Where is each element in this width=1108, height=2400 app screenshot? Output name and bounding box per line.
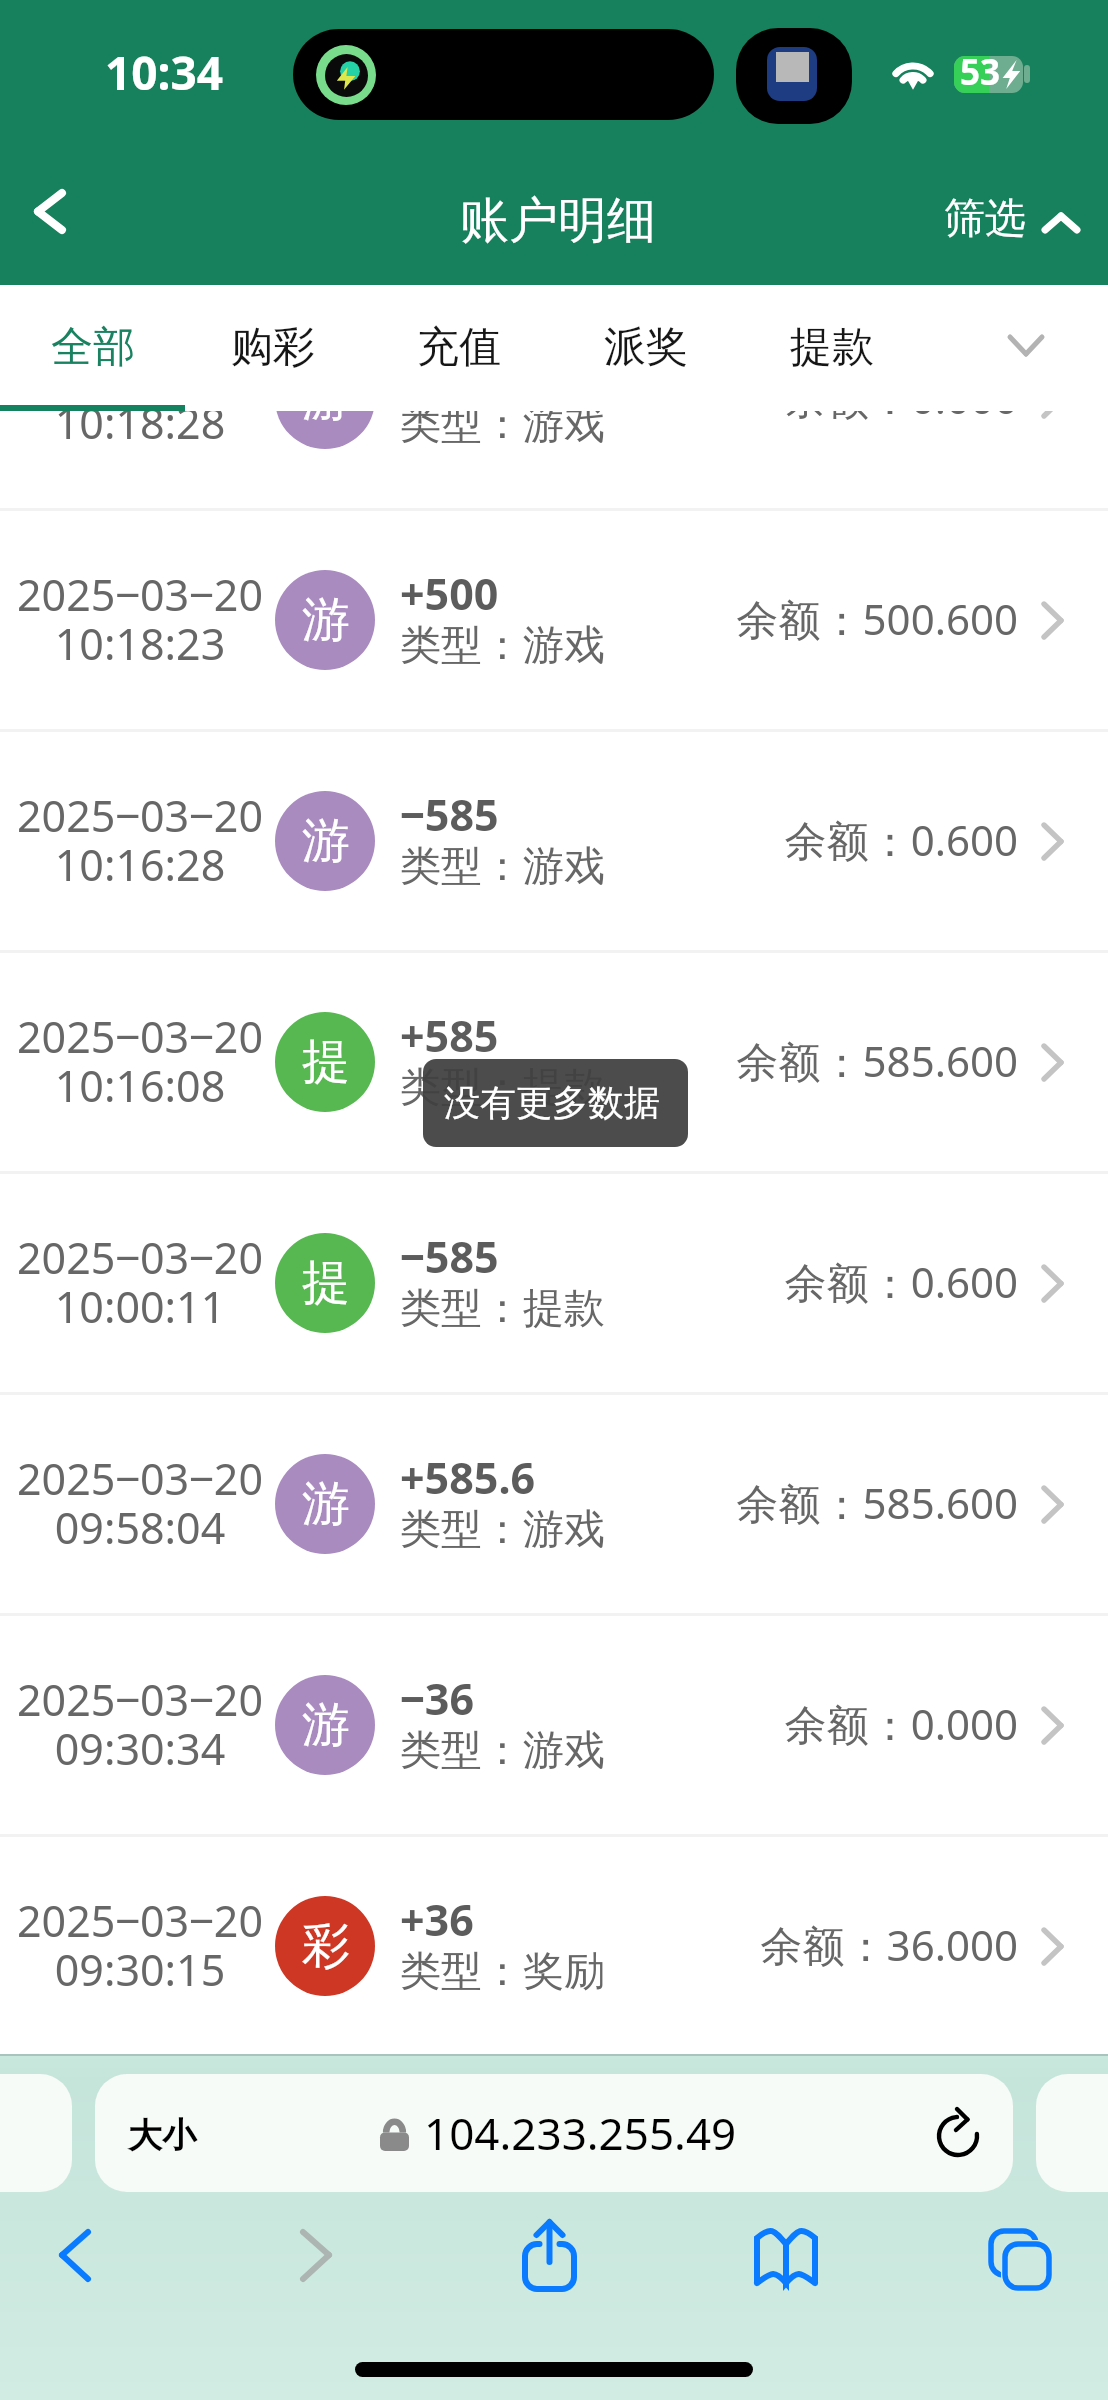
staticText: 2025‒03‒20: [17, 565, 263, 624]
staticText: +585.6: [400, 1448, 536, 1507]
staticText: 类型：游戏: [400, 399, 605, 451]
staticText: 53: [960, 56, 1001, 85]
staticText: 类型：提款: [400, 1283, 605, 1335]
staticText: 余额：500.600: [340, 590, 1018, 647]
staticText: 2025‒03‒20: [17, 1891, 263, 1950]
button[interactable]: 2025‒03‒20: [0, 1172, 1108, 1393]
staticText: 10:34: [105, 41, 224, 104]
staticText: 提款: [790, 321, 874, 374]
staticText: 2025‒03‒20: [17, 1228, 263, 1287]
staticText: 类型：游戏: [400, 620, 605, 672]
staticText: 2025‒03‒20: [17, 1449, 263, 1508]
staticText: 提: [302, 1253, 350, 1313]
staticText: 全部: [51, 321, 135, 374]
staticText: 10:16:28: [17, 835, 263, 894]
button[interactable]: Tabs: [965, 2204, 1075, 2308]
staticText: ‒585: [400, 1227, 499, 1286]
staticText: ‒36: [400, 1669, 475, 1728]
staticText: 彩: [302, 1916, 350, 1976]
staticText: 09:30:15: [17, 1940, 263, 1999]
staticText: 提: [302, 1032, 350, 1092]
staticText: 09:58:04: [17, 1498, 263, 1557]
staticText: 10:18:28: [17, 393, 263, 452]
staticText: 没有更多数据: [444, 1080, 660, 1125]
staticText: +585: [400, 1006, 499, 1065]
staticText: 购彩: [231, 321, 315, 374]
button[interactable]: 2025‒03‒20: [0, 1835, 1108, 2056]
staticText: 派奖: [604, 321, 688, 374]
button[interactable]: 2025‒03‒20: [0, 509, 1108, 730]
staticText: 余额：0.000: [340, 1695, 1018, 1752]
staticText: 游: [302, 369, 350, 429]
staticText: ‒585: [400, 785, 499, 844]
button[interactable]: 2025‒03‒20: [0, 1393, 1108, 1614]
staticText: 104.233.255.49: [424, 2103, 737, 2163]
staticText: 账户明细: [460, 190, 656, 252]
button[interactable]: 筛选: [925, 160, 1108, 270]
staticText: 类型：游戏: [400, 1504, 605, 1556]
button[interactable]: 购彩: [193, 285, 353, 403]
staticText: 10:18:23: [17, 614, 263, 673]
staticText: 2025‒03‒20: [17, 1670, 263, 1729]
staticText: 余额：0.000: [340, 369, 1018, 426]
button[interactable]: 大小: [95, 2074, 1013, 2192]
button[interactable]: 充值: [379, 285, 539, 403]
button[interactable]: 2025‒03‒20: [0, 951, 1108, 1172]
button[interactable]: Back: [22, 2204, 132, 2308]
staticText: +500: [400, 564, 499, 623]
staticText: 游: [302, 1474, 350, 1534]
staticText: 类型：游戏: [400, 1725, 605, 1777]
staticText: 余额：0.600: [340, 811, 1018, 868]
button[interactable]: 提款: [752, 285, 912, 403]
staticText: 大小: [128, 2114, 196, 2157]
staticText: 余额：585.600: [340, 1032, 1018, 1089]
button[interactable]: 全部: [13, 285, 173, 403]
staticText: +36: [400, 1890, 474, 1949]
staticText: 2025‒03‒20: [17, 786, 263, 845]
button[interactable]: Forward: [263, 2204, 373, 2308]
staticText: 余额：0.600: [340, 1253, 1018, 1310]
staticText: 类型：奖励: [400, 1946, 605, 1998]
button[interactable]: 2025‒03‒20: [0, 1614, 1108, 1835]
button[interactable]: Back: [0, 158, 100, 268]
button[interactable]: Share: [494, 2204, 604, 2308]
button[interactable]: 2025‒03‒20: [0, 288, 1108, 509]
button[interactable]: 派奖: [566, 285, 726, 403]
staticText: 游: [302, 590, 350, 650]
button[interactable]: Reload: [915, 2100, 1001, 2186]
button[interactable]: 2025‒03‒20: [0, 730, 1108, 951]
staticText: 类型：游戏: [400, 841, 605, 893]
button[interactable]: Bookmarks: [729, 2204, 839, 2308]
staticText: 10:16:08: [17, 1056, 263, 1115]
staticText: 余额：36.000: [340, 1916, 1018, 1973]
staticText: 09:30:34: [17, 1719, 263, 1778]
staticText: 游: [302, 811, 350, 871]
staticText: 2025‒03‒20: [17, 1007, 263, 1066]
staticText: 10:00:11: [17, 1277, 263, 1336]
staticText: 类型：提款: [400, 1062, 605, 1114]
button[interactable]: Expand tabs: [982, 293, 1072, 383]
staticText: 2025‒03‒20: [17, 344, 263, 403]
staticText: +500: [400, 343, 499, 402]
staticText: 余额：585.600: [340, 1474, 1018, 1531]
staticText: 筛选: [944, 193, 1026, 245]
staticText: 游: [302, 1695, 350, 1755]
staticText: 充值: [417, 321, 501, 374]
